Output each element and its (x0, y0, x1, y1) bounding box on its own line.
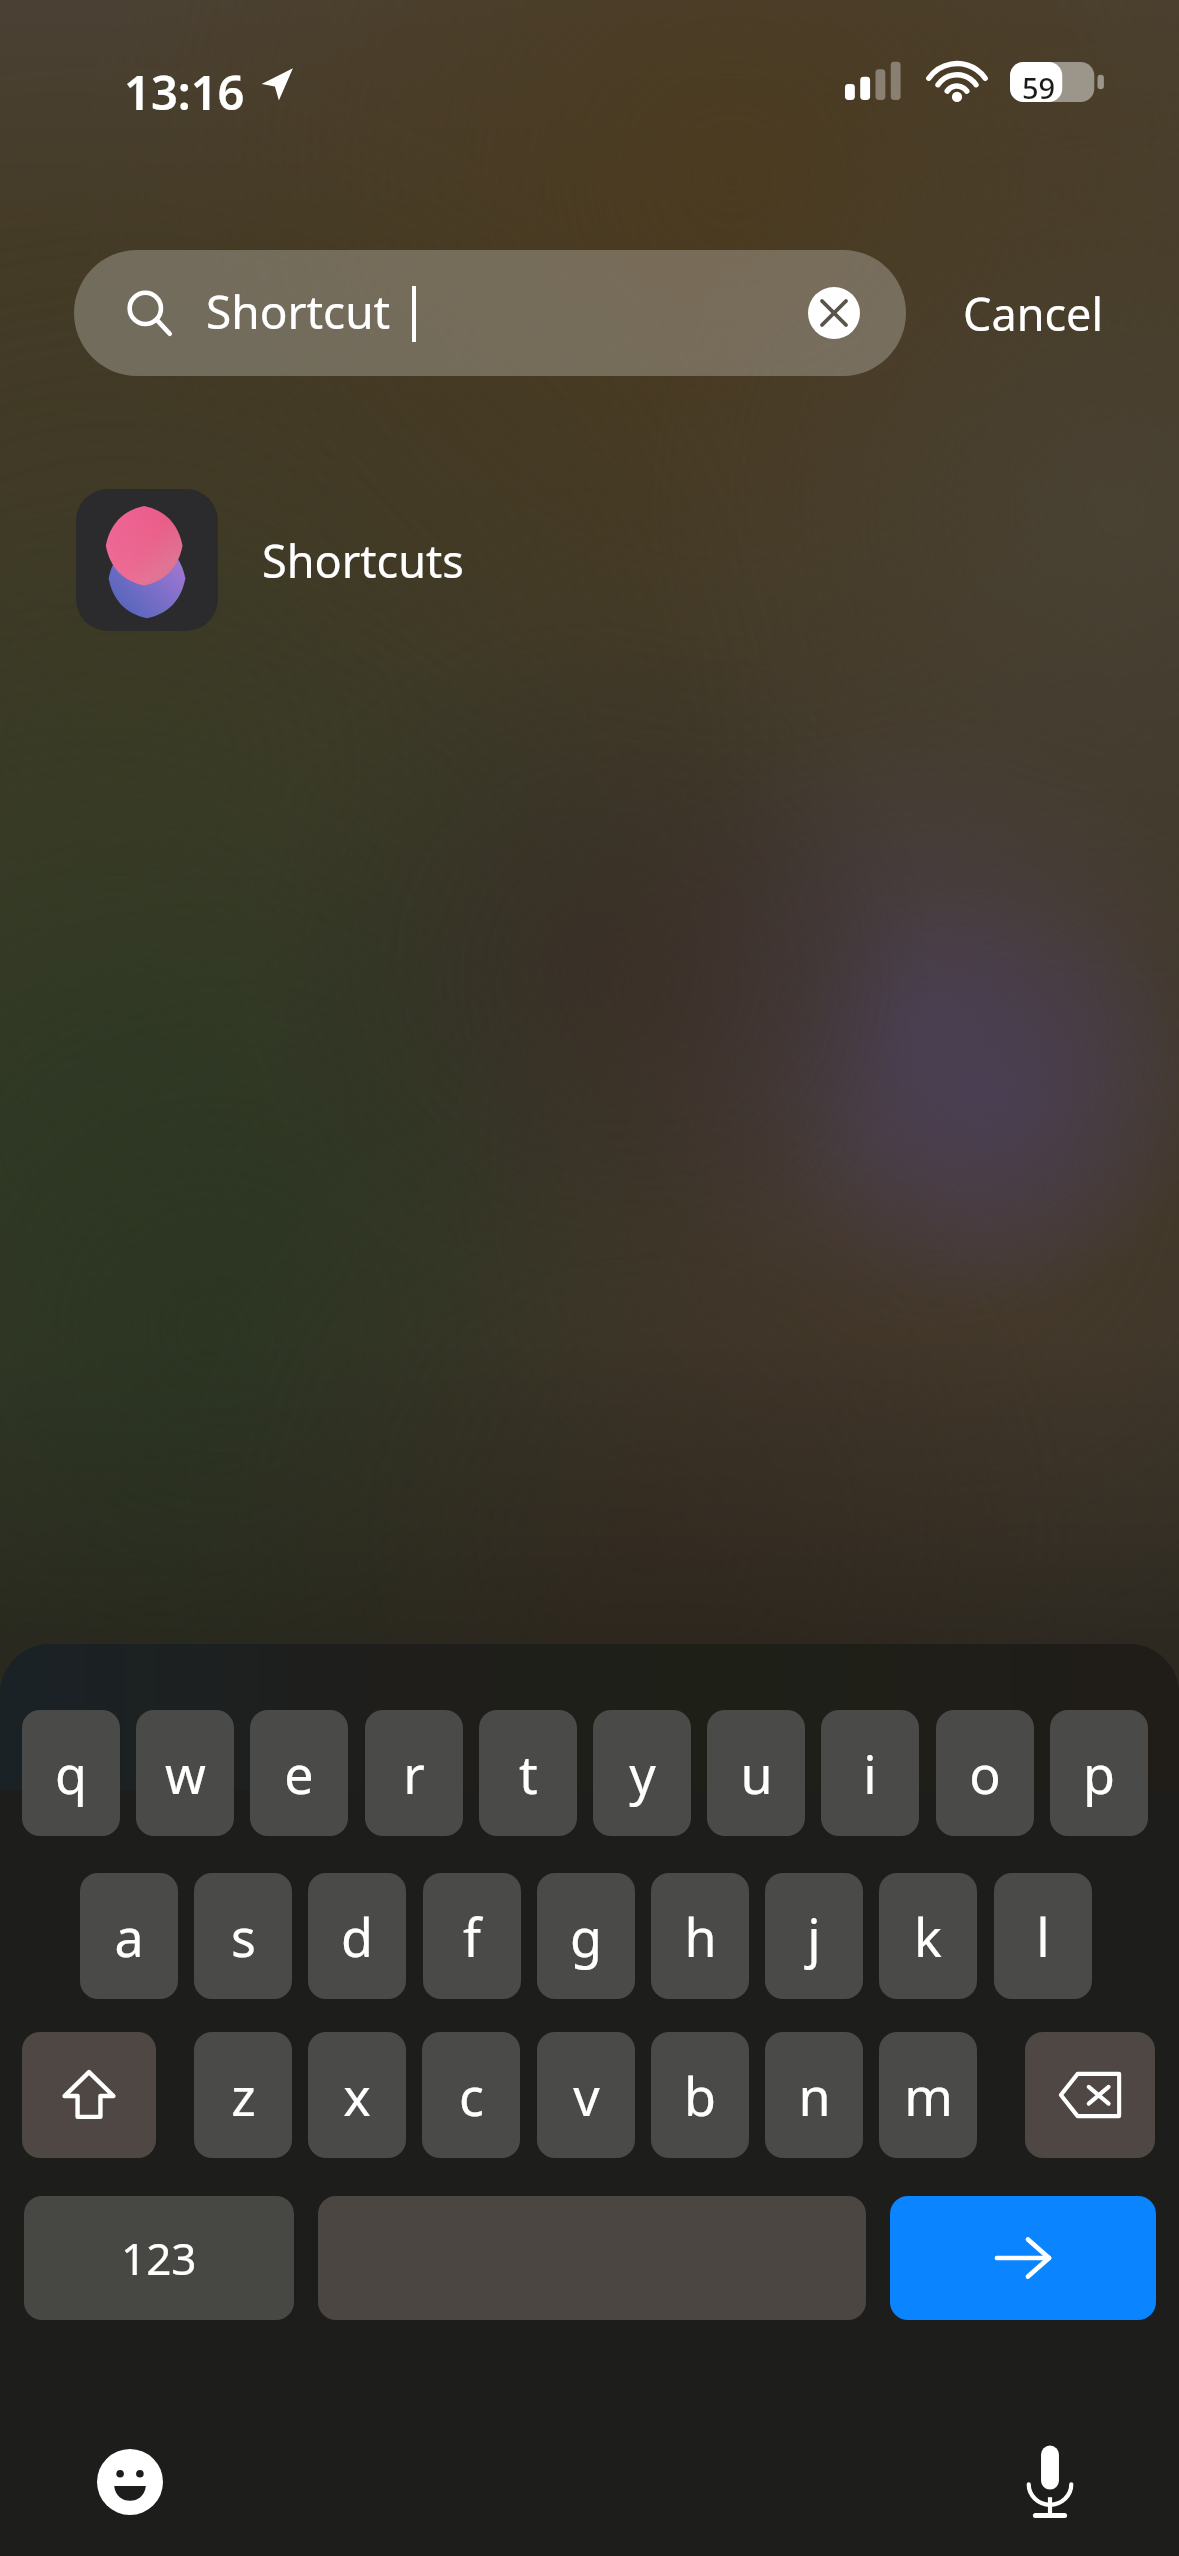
staticText: w (165, 1738, 206, 1809)
staticText: h (684, 1901, 717, 1972)
button[interactable]: l (994, 1873, 1092, 1999)
staticText: z (231, 2060, 256, 2131)
staticText: s (231, 1901, 256, 1972)
button[interactable]: r (365, 1710, 463, 1836)
staticText: j (807, 1901, 821, 1972)
button[interactable]: n (765, 2032, 863, 2158)
button[interactable]: Cancel (930, 250, 1140, 376)
staticText: m (904, 2060, 953, 2131)
button[interactable]: Shortcut (74, 250, 906, 376)
button[interactable]: Backspace (1025, 2032, 1155, 2158)
button[interactable]: t (479, 1710, 577, 1836)
button[interactable]: Emoji (80, 2432, 180, 2532)
staticText: 13:16 (124, 60, 245, 124)
button[interactable]: x (308, 2032, 406, 2158)
staticText: g (570, 1901, 602, 1972)
button[interactable]: j (765, 1873, 863, 1999)
staticText: Cancel (963, 283, 1104, 344)
staticText: e (284, 1738, 314, 1809)
staticText: q (55, 1738, 87, 1809)
button[interactable]: f (423, 1873, 521, 1999)
button[interactable]: d (308, 1873, 406, 1999)
button[interactable]: i (821, 1710, 919, 1836)
staticText: n (798, 2060, 831, 2131)
staticText: v (573, 2060, 600, 2131)
button[interactable]: m (879, 2032, 977, 2158)
staticText: b (684, 2060, 716, 2131)
staticText: c (459, 2060, 484, 2131)
button[interactable]: g (537, 1873, 635, 1999)
staticText: r (403, 1738, 425, 1809)
button[interactable]: 123 (24, 2196, 294, 2320)
staticText: 59 (1022, 68, 1056, 107)
button[interactable]: y (593, 1710, 691, 1836)
button[interactable]: s (194, 1873, 292, 1999)
staticText: d (341, 1901, 373, 1972)
button[interactable]: k (879, 1873, 977, 1999)
button[interactable]: w (136, 1710, 234, 1836)
button[interactable]: Clear text (808, 287, 860, 339)
button[interactable]: Dictate (1000, 2432, 1100, 2532)
button[interactable]: p (1050, 1710, 1148, 1836)
button[interactable]: z (194, 2032, 292, 2158)
staticText: l (1036, 1901, 1050, 1972)
button[interactable]: q (22, 1710, 120, 1836)
staticText: u (740, 1738, 773, 1809)
button[interactable]: h (651, 1873, 749, 1999)
button[interactable]: Go (890, 2196, 1156, 2320)
button[interactable]: Shift (22, 2032, 156, 2158)
staticText: p (1083, 1738, 1115, 1809)
button[interactable]: v (537, 2032, 635, 2158)
staticText: x (343, 2060, 371, 2131)
staticText: a (114, 1901, 144, 1972)
staticText: Shortcut (206, 280, 391, 343)
button[interactable]: Shortcuts (40, 478, 1179, 642)
staticText: o (969, 1738, 1001, 1809)
staticText: 123 (121, 2228, 197, 2288)
staticText: t (519, 1738, 538, 1809)
button[interactable]: b (651, 2032, 749, 2158)
button[interactable]: o (936, 1710, 1034, 1836)
button[interactable]: c (422, 2032, 520, 2158)
button[interactable]: u (707, 1710, 805, 1836)
button[interactable]: a (80, 1873, 178, 1999)
staticText: Shortcuts (262, 530, 464, 591)
button[interactable]: e (250, 1710, 348, 1836)
staticText: k (914, 1901, 942, 1972)
staticText: y (629, 1738, 656, 1809)
staticText: f (463, 1901, 481, 1972)
staticText: i (863, 1738, 877, 1809)
